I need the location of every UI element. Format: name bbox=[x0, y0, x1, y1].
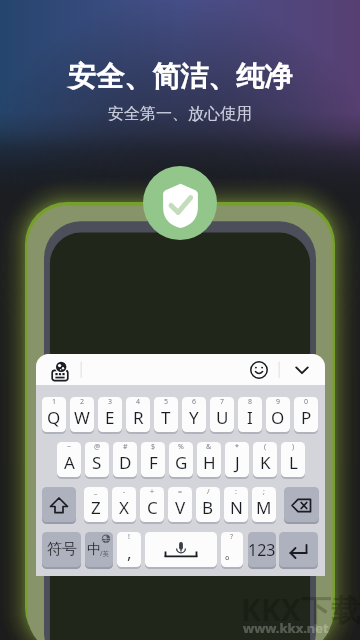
staticText: U bbox=[216, 406, 229, 429]
staticText: M bbox=[256, 496, 272, 519]
button[interactable]: @ bbox=[85, 442, 109, 479]
staticText: B bbox=[202, 496, 214, 519]
staticText: 123 bbox=[248, 539, 276, 561]
staticText: L bbox=[289, 451, 298, 474]
button[interactable]: % bbox=[169, 442, 193, 479]
staticText: ? bbox=[230, 532, 234, 542]
staticText: R bbox=[133, 406, 144, 429]
staticText: D bbox=[119, 451, 132, 474]
button[interactable]: Space bbox=[145, 532, 217, 569]
staticText: / bbox=[207, 487, 210, 497]
button[interactable]: 9 bbox=[266, 397, 290, 434]
button[interactable]: ; bbox=[252, 487, 276, 524]
staticText: 6 bbox=[192, 397, 197, 407]
button[interactable]: / bbox=[196, 487, 220, 524]
button[interactable]: 7 bbox=[210, 397, 234, 434]
staticText: K bbox=[260, 451, 271, 474]
staticText: ( bbox=[264, 442, 267, 452]
staticText: S bbox=[92, 451, 102, 474]
staticText: 1 bbox=[52, 397, 57, 407]
button[interactable]: - bbox=[112, 487, 136, 524]
button[interactable]: Backspace bbox=[284, 487, 319, 524]
button[interactable]: 5 bbox=[154, 397, 178, 434]
button[interactable]: Enter bbox=[279, 532, 318, 569]
button[interactable]: + bbox=[140, 487, 164, 524]
staticText: 5 bbox=[164, 397, 169, 407]
button[interactable]: ~ bbox=[57, 442, 81, 479]
staticText: 安全、简洁、纯净 bbox=[68, 59, 292, 94]
staticText: 3 bbox=[108, 397, 113, 407]
button[interactable]: 1 bbox=[42, 397, 66, 434]
staticText: I bbox=[247, 406, 253, 429]
button[interactable]: ) bbox=[281, 442, 305, 479]
staticText: ~ bbox=[67, 442, 72, 452]
staticText: O bbox=[271, 406, 285, 429]
staticText: , bbox=[127, 541, 132, 564]
staticText: 4 bbox=[136, 397, 141, 407]
staticText: J bbox=[235, 451, 240, 474]
button[interactable]: 123 bbox=[248, 532, 276, 569]
staticText: 中 bbox=[87, 541, 101, 559]
button[interactable]: & bbox=[197, 442, 221, 479]
button[interactable]: ! bbox=[117, 532, 141, 569]
staticText: 9 bbox=[276, 397, 281, 407]
staticText: 2 bbox=[80, 397, 85, 407]
staticText: : bbox=[235, 487, 237, 497]
button[interactable]: 3 bbox=[98, 397, 122, 434]
staticText: % bbox=[178, 442, 184, 452]
staticText: + bbox=[150, 487, 155, 497]
staticText: 0 bbox=[304, 397, 309, 407]
staticText: F bbox=[149, 451, 158, 474]
staticText: /英 bbox=[100, 549, 109, 558]
staticText: ; bbox=[263, 487, 265, 497]
button[interactable]: Shift bbox=[42, 487, 76, 524]
button[interactable]: Hide keyboard bbox=[290, 358, 314, 382]
button[interactable]: Security shield bbox=[143, 166, 217, 240]
button[interactable]: Switch language bbox=[48, 358, 72, 382]
staticText: 。 bbox=[224, 542, 241, 563]
staticText: # bbox=[123, 442, 128, 452]
staticText: G bbox=[175, 451, 188, 474]
staticText: Z bbox=[91, 496, 101, 519]
staticText: www.kkx.net bbox=[243, 619, 329, 637]
staticText: P bbox=[301, 406, 312, 429]
staticText: - bbox=[123, 487, 126, 497]
staticText: A bbox=[64, 451, 75, 474]
staticText: N bbox=[230, 496, 243, 519]
staticText: Y bbox=[189, 406, 199, 429]
button[interactable]: _ bbox=[84, 487, 108, 524]
button[interactable]: 符号 bbox=[42, 532, 81, 569]
button[interactable]: : bbox=[224, 487, 248, 524]
staticText: 8 bbox=[248, 397, 253, 407]
staticText: 7 bbox=[220, 397, 225, 407]
button[interactable]: 2 bbox=[70, 397, 94, 434]
staticText: E bbox=[105, 406, 115, 429]
staticText: X bbox=[119, 496, 129, 519]
button[interactable]: 4 bbox=[126, 397, 150, 434]
staticText: T bbox=[161, 406, 171, 429]
staticText: = bbox=[178, 487, 183, 497]
staticText: ) bbox=[292, 442, 295, 452]
button[interactable]: # bbox=[113, 442, 137, 479]
staticText: W bbox=[74, 406, 90, 429]
button[interactable]: * bbox=[225, 442, 249, 479]
button[interactable]: 6 bbox=[182, 397, 206, 434]
staticText: _ bbox=[94, 487, 98, 497]
button[interactable]: 8 bbox=[238, 397, 262, 434]
staticText: $ bbox=[151, 442, 156, 452]
button[interactable]: 中 bbox=[85, 532, 113, 569]
button[interactable]: ( bbox=[253, 442, 277, 479]
staticText: 安全第一、放心使用 bbox=[108, 104, 252, 124]
staticText: KKX下载 bbox=[241, 589, 360, 630]
button[interactable]: = bbox=[168, 487, 192, 524]
button[interactable]: 0 bbox=[294, 397, 318, 434]
staticText: 符号 bbox=[47, 540, 77, 559]
staticText: ! bbox=[128, 532, 130, 542]
staticText: * bbox=[235, 442, 239, 452]
button[interactable]: ? bbox=[221, 532, 243, 569]
staticText: V bbox=[175, 496, 186, 519]
staticText: C bbox=[147, 496, 158, 519]
staticText: H bbox=[203, 451, 216, 474]
button[interactable]: $ bbox=[141, 442, 165, 479]
button[interactable]: Emoji bbox=[247, 358, 271, 382]
